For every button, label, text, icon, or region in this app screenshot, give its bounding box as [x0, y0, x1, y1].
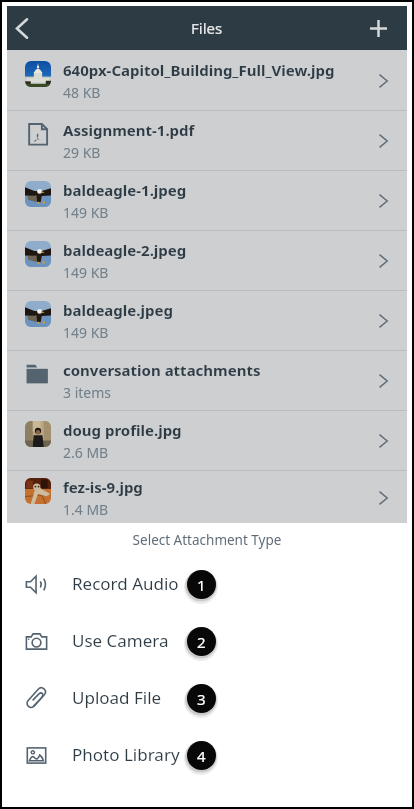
staticText: Upload File: [72, 686, 162, 709]
button[interactable]: Add: [363, 6, 407, 50]
staticText: baldeagle.jpeg: [63, 300, 173, 320]
button[interactable]: baldeagle-2.jpeg: [7, 231, 407, 290]
staticText: conversation attachments: [63, 360, 261, 380]
button[interactable]: Use Camera: [2, 612, 412, 669]
staticText: 1.4 MB: [63, 500, 109, 519]
staticText: 4: [197, 746, 206, 766]
staticText: doug profile.jpg: [63, 420, 182, 440]
button[interactable]: conversation attachments: [7, 351, 407, 410]
button[interactable]: fez-is-9.jpg: [7, 471, 407, 524]
staticText: 1: [197, 575, 206, 595]
button[interactable]: doug profile.jpg: [7, 411, 407, 470]
staticText: 149 KB: [63, 323, 109, 342]
staticText: fez-is-9.jpg: [63, 477, 143, 497]
staticText: Select Attachment Type: [2, 531, 412, 549]
button[interactable]: Upload File: [2, 669, 412, 726]
staticText: 149 KB: [63, 263, 109, 282]
staticText: baldeagle-1.jpeg: [63, 180, 187, 200]
staticText: 2.6 MB: [63, 443, 109, 462]
staticText: 3: [197, 689, 206, 709]
staticText: 640px-Capitol_Building_Full_View.jpg: [63, 60, 335, 80]
staticText: Record Audio: [72, 572, 179, 595]
staticText: 2: [197, 632, 206, 652]
staticText: Use Camera: [72, 629, 169, 652]
staticText: 3 items: [63, 383, 112, 402]
staticText: Files: [191, 18, 223, 38]
button[interactable]: Back: [7, 6, 45, 50]
button[interactable]: Photo Library: [2, 726, 412, 783]
staticText: 149 KB: [63, 203, 109, 222]
button[interactable]: 640px-Capitol_Building_Full_View.jpg: [7, 51, 407, 110]
button[interactable]: baldeagle-1.jpeg: [7, 171, 407, 230]
button[interactable]: baldeagle.jpeg: [7, 291, 407, 350]
button[interactable]: Record Audio: [2, 555, 412, 612]
staticText: 48 KB: [63, 83, 101, 102]
staticText: Photo Library: [72, 743, 180, 766]
staticText: baldeagle-2.jpeg: [63, 240, 187, 260]
button[interactable]: Assignment-1.pdf: [7, 111, 407, 170]
staticText: Assignment-1.pdf: [63, 120, 195, 140]
staticText: 29 KB: [63, 143, 101, 162]
